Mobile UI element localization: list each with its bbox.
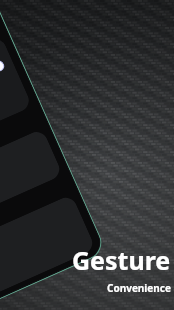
button[interactable]: Toggle gesture blocking [0,59,6,77]
button[interactable]: Gesture blocking area [0,35,33,160]
button[interactable]: Swipe sensitivity [0,128,63,229]
staticText: Convenience [107,281,171,295]
staticText: Gesture [72,243,171,277]
button[interactable] [0,194,96,303]
